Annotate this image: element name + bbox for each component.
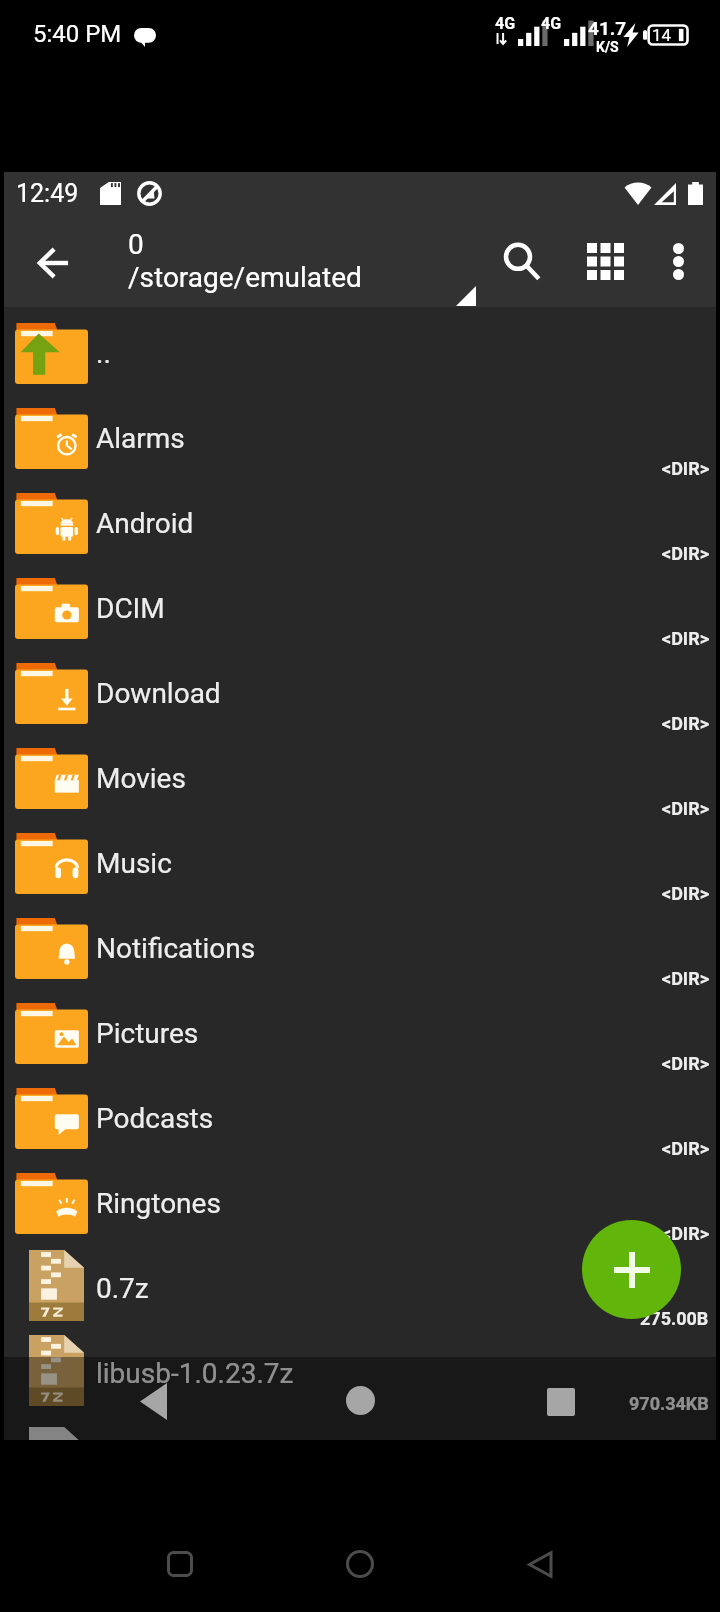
button[interactable]: Android [4, 477, 716, 562]
staticText: <DIR> [662, 713, 709, 734]
button[interactable]: Recents [144, 1528, 216, 1600]
button[interactable]: Back [121, 1369, 185, 1433]
button[interactable]: Music [4, 817, 716, 902]
button[interactable]: Alarms [4, 392, 716, 477]
button[interactable]: Home [324, 1528, 396, 1600]
staticText: 275.00B [640, 1308, 709, 1329]
button[interactable]: Add [582, 1220, 681, 1319]
button[interactable]: Back [9, 219, 97, 306]
staticText: <DIR> [662, 883, 709, 904]
staticText: DCIM [96, 592, 165, 625]
staticText: libusb-1.0.23.7z [96, 1357, 294, 1390]
button[interactable]: Home [328, 1368, 392, 1432]
staticText: Movies [96, 762, 186, 795]
staticText: 970.34KB [629, 1393, 709, 1414]
staticText: 4G [495, 14, 516, 33]
staticText: 12:49 [16, 179, 79, 208]
staticText: <DIR> [662, 1223, 709, 1244]
button[interactable]: .. [4, 307, 716, 392]
button[interactable]: Recents [529, 1370, 593, 1434]
button[interactable]: Pictures [4, 987, 716, 1072]
staticText: <DIR> [662, 1138, 709, 1159]
button[interactable]: libusb-1.0.23.7z [4, 1327, 716, 1412]
button[interactable]: Ringtones [4, 1157, 716, 1242]
button[interactable]: 0.7z [4, 1242, 716, 1327]
button[interactable]: Back [504, 1528, 576, 1600]
staticText: Download [96, 677, 221, 710]
button[interactable]: More options [646, 218, 710, 305]
staticText: Ringtones [96, 1187, 221, 1220]
staticText: <DIR> [662, 543, 709, 564]
button[interactable]: Download [4, 647, 716, 732]
staticText: K/S [596, 39, 619, 55]
staticText: 0 [128, 228, 144, 261]
staticText: <DIR> [662, 1053, 709, 1074]
button[interactable]: Podcasts [4, 1072, 716, 1157]
staticText: 5:40 PM [33, 20, 122, 48]
staticText: /storage/emulated [128, 261, 362, 294]
staticText: <DIR> [662, 798, 709, 819]
staticText: <DIR> [662, 458, 709, 479]
staticText: Android [96, 507, 194, 540]
staticText: <DIR> [662, 628, 709, 649]
button[interactable]: Search [486, 218, 558, 305]
staticText: .. [96, 337, 111, 370]
staticText: Alarms [96, 422, 185, 455]
staticText: Music [96, 847, 172, 880]
staticText: 41.7 [588, 17, 627, 39]
staticText: Pictures [96, 1017, 199, 1050]
staticText: <DIR> [662, 968, 709, 989]
button[interactable]: Movies [4, 732, 716, 817]
button[interactable]: Notifications [4, 902, 716, 987]
staticText: Podcasts [96, 1102, 214, 1135]
staticText: Notifications [96, 932, 256, 965]
button[interactable]: DCIM [4, 562, 716, 647]
staticText: 4G [541, 14, 562, 33]
button[interactable]: Grid view [569, 217, 641, 304]
staticText: 14 [652, 25, 672, 45]
staticText: 0.7z [96, 1272, 149, 1305]
